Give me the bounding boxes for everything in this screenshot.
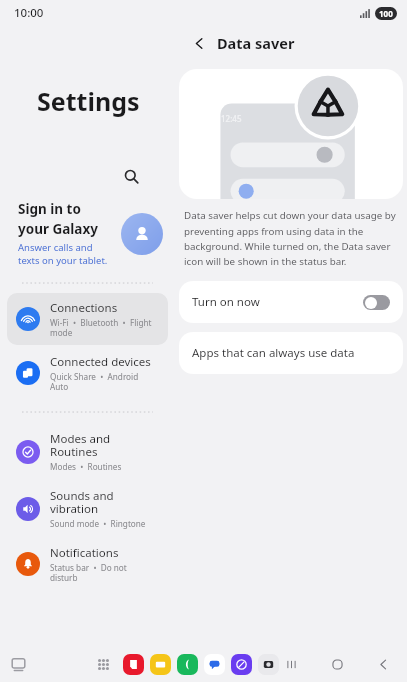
staticText: Answer calls and <box>18 241 93 254</box>
button[interactable]: Internet <box>231 654 252 675</box>
button[interactable]: Modes and Routines <box>7 424 168 479</box>
staticText: Modes and Routines <box>50 431 111 460</box>
button[interactable]: Connected devices <box>7 347 168 399</box>
button[interactable]: Camera <box>258 654 279 675</box>
staticText: Sounds and vibration <box>50 488 114 517</box>
button[interactable]: Connections <box>7 293 168 345</box>
staticText: Data saver helps cut down your data usag… <box>184 209 398 268</box>
staticText: Notifications <box>50 545 119 561</box>
button[interactable]: Notes <box>123 654 144 675</box>
staticText: Status bar • Do not disturb <box>50 562 127 583</box>
staticText: your Galaxy <box>18 220 98 238</box>
staticText: 10:00 <box>14 5 44 21</box>
staticText: Sound mode • Ringtone <box>50 518 146 529</box>
staticText: 100 <box>379 8 393 19</box>
button[interactable]: Search <box>115 160 147 192</box>
button[interactable]: Files <box>150 654 171 675</box>
button[interactable]: Recents panel <box>6 652 30 676</box>
button[interactable]: Home <box>323 650 351 678</box>
button[interactable]: Turn on now <box>179 281 403 323</box>
staticText: Turn on now <box>192 294 363 310</box>
staticText: Connected devices <box>50 354 151 370</box>
button[interactable]: Apps that can always use data <box>179 332 403 374</box>
button[interactable]: Apps <box>91 652 115 676</box>
button[interactable]: Sounds and vibration <box>7 481 168 536</box>
staticText: texts on your tablet. <box>18 254 108 267</box>
button[interactable]: Back <box>186 30 212 56</box>
staticText: Settings <box>37 84 140 118</box>
staticText: 12:45 <box>221 113 242 124</box>
button[interactable]: Notifications <box>7 538 168 590</box>
staticText: Apps that can always use data <box>192 345 355 361</box>
staticText: Quick Share • Android Auto <box>50 371 139 392</box>
staticText: Modes • Routines <box>50 461 122 472</box>
button[interactable]: Sign in to <box>18 200 163 267</box>
button[interactable]: Messages <box>204 654 225 675</box>
staticText: Data saver <box>217 33 295 53</box>
staticText: Connections <box>50 300 118 316</box>
button[interactable]: Phone <box>177 654 198 675</box>
staticText: Sign in to <box>18 200 81 218</box>
button[interactable]: Recent apps <box>277 650 305 678</box>
staticText: Wi-Fi • Bluetooth • Flight mode <box>50 317 152 338</box>
button[interactable]: Back <box>369 650 397 678</box>
